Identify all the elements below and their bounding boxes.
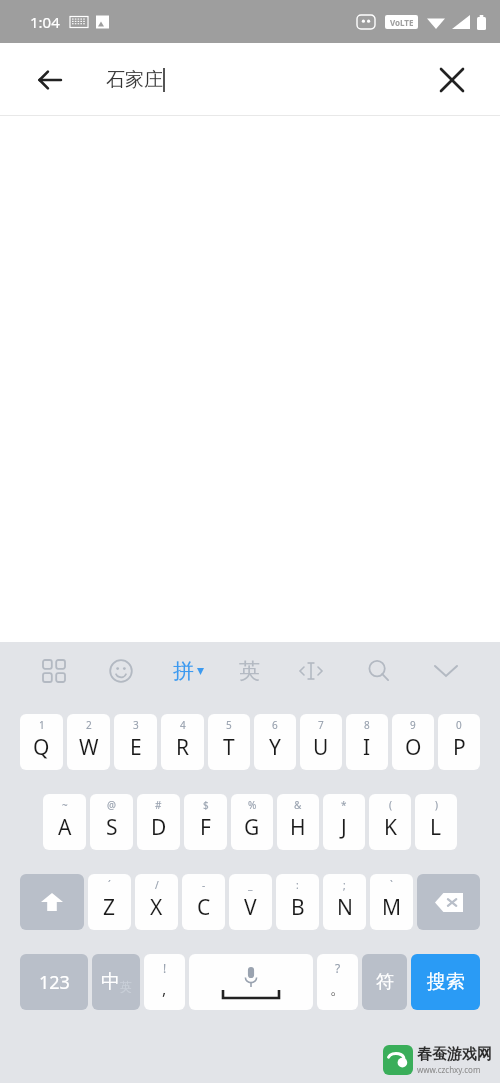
button[interactable]: # <box>137 794 180 850</box>
staticText: 拼 <box>173 658 194 684</box>
staticText: $ <box>203 798 209 812</box>
button[interactable]: Clear <box>430 58 474 102</box>
staticText: & <box>294 798 302 812</box>
button[interactable]: 0 <box>438 714 480 770</box>
staticText: ~ <box>62 798 68 812</box>
button[interactable]: & <box>277 794 319 850</box>
button[interactable]: Shift <box>20 874 84 930</box>
button[interactable]: 符 <box>362 954 407 1010</box>
staticText: A <box>58 813 72 842</box>
staticText: - <box>202 878 206 892</box>
button[interactable]: * <box>323 794 365 850</box>
staticText: P <box>453 733 466 762</box>
button[interactable]: 9 <box>392 714 434 770</box>
staticText: X <box>150 893 163 922</box>
staticText: B <box>291 893 305 922</box>
staticText: # <box>155 798 162 812</box>
button[interactable]: 7 <box>300 714 342 770</box>
button[interactable]: - <box>182 874 225 930</box>
staticText: 7 <box>318 718 324 732</box>
staticText: 2 <box>86 718 92 732</box>
button[interactable]: 1 <box>20 714 63 770</box>
button[interactable]: 英 <box>235 654 264 688</box>
staticText: L <box>430 813 442 842</box>
button[interactable]: _ <box>229 874 272 930</box>
button[interactable]: $ <box>184 794 227 850</box>
button[interactable]: ~ <box>43 794 86 850</box>
staticText: 8 <box>364 718 370 732</box>
button[interactable]: @ <box>90 794 133 850</box>
staticText: 1 <box>39 718 45 732</box>
staticText: 5 <box>226 718 232 732</box>
staticText: M <box>382 893 402 922</box>
button[interactable]: ` <box>370 874 413 930</box>
staticText: J <box>341 813 347 842</box>
staticText: ; <box>343 878 346 892</box>
button[interactable]: 8 <box>346 714 388 770</box>
button[interactable]: 搜索 <box>411 954 480 1010</box>
staticText: R <box>176 733 190 762</box>
staticText: Q <box>33 733 50 762</box>
staticText: ´ <box>108 878 111 892</box>
button[interactable]: 6 <box>254 714 296 770</box>
staticText: 6 <box>272 718 278 732</box>
staticText: U <box>313 733 329 762</box>
staticText: C <box>197 893 211 922</box>
staticText: ? <box>335 960 341 976</box>
staticText: 英 <box>120 979 132 994</box>
staticText: 石家庄 <box>106 68 163 92</box>
staticText: V <box>244 893 257 922</box>
button[interactable]: Delete <box>417 874 480 930</box>
staticText: 4 <box>180 718 186 732</box>
button[interactable]: 5 <box>208 714 250 770</box>
staticText: , <box>162 978 167 1000</box>
staticText: F <box>200 813 211 842</box>
button[interactable]: ; <box>323 874 366 930</box>
staticText: VoLTE <box>390 17 414 28</box>
staticText: * <box>341 798 347 812</box>
button[interactable]: : <box>276 874 319 930</box>
staticText: 中 <box>101 970 120 994</box>
button[interactable]: 123 <box>20 954 88 1010</box>
staticText: 0 <box>456 718 462 732</box>
button[interactable]: 2 <box>67 714 110 770</box>
staticText: 英 <box>239 658 260 684</box>
staticText: 符 <box>376 971 394 994</box>
button[interactable]: Apps <box>34 651 74 691</box>
button[interactable]: 中 <box>92 954 140 1010</box>
button[interactable]: / <box>135 874 178 930</box>
staticText: S <box>106 813 118 842</box>
button[interactable]: 拼 <box>169 654 208 688</box>
button[interactable]: Space <box>189 954 313 1010</box>
button[interactable]: Emoji <box>101 651 141 691</box>
button[interactable]: 4 <box>161 714 204 770</box>
staticText: T <box>223 733 235 762</box>
staticText: www.czchxy.com <box>417 1064 481 1075</box>
staticText: I <box>363 733 371 762</box>
button[interactable]: Back <box>28 58 72 102</box>
button[interactable]: ) <box>415 794 457 850</box>
staticText: % <box>248 798 257 812</box>
button[interactable]: Search <box>359 651 399 691</box>
button[interactable]: ( <box>369 794 411 850</box>
button[interactable]: ! <box>144 954 185 1010</box>
button[interactable]: Cursor <box>291 651 331 691</box>
staticText: 春蚕游戏网 <box>417 1045 492 1064</box>
staticText: 搜索 <box>427 970 465 994</box>
staticText: E <box>130 733 142 762</box>
staticText: / <box>155 878 159 892</box>
button[interactable]: ´ <box>88 874 131 930</box>
staticText: 3 <box>133 718 139 732</box>
button[interactable]: Hide keyboard <box>426 651 466 691</box>
button[interactable]: % <box>231 794 273 850</box>
staticText: O <box>405 733 422 762</box>
button[interactable]: 3 <box>114 714 157 770</box>
staticText: N <box>337 893 353 922</box>
staticText: D <box>151 813 167 842</box>
staticText: 9 <box>410 718 416 732</box>
staticText: Y <box>269 733 281 762</box>
staticText: 。 <box>330 979 346 999</box>
staticText: @ <box>107 798 116 812</box>
staticText: ` <box>390 878 393 892</box>
button[interactable]: ? <box>317 954 358 1010</box>
